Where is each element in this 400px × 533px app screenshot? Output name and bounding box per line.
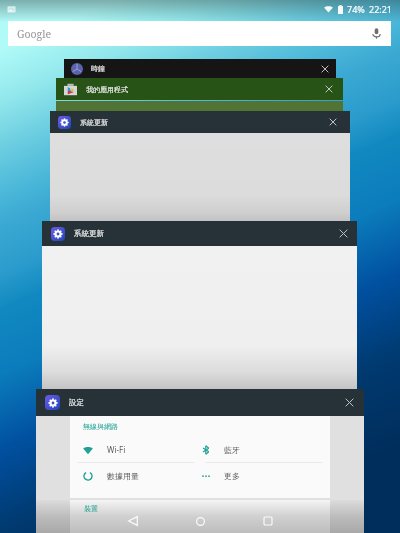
- staticText: 數據用量: [107, 471, 139, 481]
- staticText: Google: [17, 27, 52, 41]
- button[interactable]: Dismiss: [336, 389, 363, 416]
- staticText: 74%: [347, 3, 365, 15]
- button[interactable]: Google: [8, 21, 391, 46]
- staticText: 系統更新: [80, 118, 108, 127]
- other: Voice search: [370, 27, 383, 40]
- button[interactable]: Wi-Fi: [70, 437, 200, 462]
- button[interactable]: 系統更新: [50, 111, 350, 133]
- button[interactable]: Dismiss: [322, 111, 344, 133]
- staticText: 設定: [69, 398, 84, 407]
- button[interactable]: 時鐘: [64, 59, 336, 78]
- button[interactable]: 數據用量: [70, 463, 200, 488]
- staticText: 無線與網路: [83, 422, 118, 431]
- staticText: 藍牙: [224, 445, 240, 455]
- button[interactable]: Dismiss: [318, 78, 340, 100]
- button[interactable]: 系統更新: [42, 221, 357, 246]
- button[interactable]: Dismiss: [315, 59, 334, 78]
- button[interactable]: Home: [187, 508, 213, 533]
- staticText: 時鐘: [91, 64, 105, 73]
- staticText: 更多: [224, 471, 240, 481]
- staticText: 22:21: [369, 3, 393, 15]
- button[interactable]: 我的應用程式: [56, 78, 343, 100]
- staticText: 裝置: [84, 504, 98, 513]
- staticText: 我的應用程式: [86, 85, 128, 94]
- staticText: Wi-Fi: [107, 444, 126, 455]
- staticText: 系統更新: [74, 229, 104, 238]
- button[interactable]: Back: [120, 508, 146, 533]
- button[interactable]: 藍牙: [200, 437, 330, 462]
- button[interactable]: Recents: [255, 508, 281, 533]
- button[interactable]: 設定: [36, 389, 364, 416]
- button[interactable]: Dismiss: [331, 221, 356, 246]
- button[interactable]: 更多: [200, 463, 330, 488]
